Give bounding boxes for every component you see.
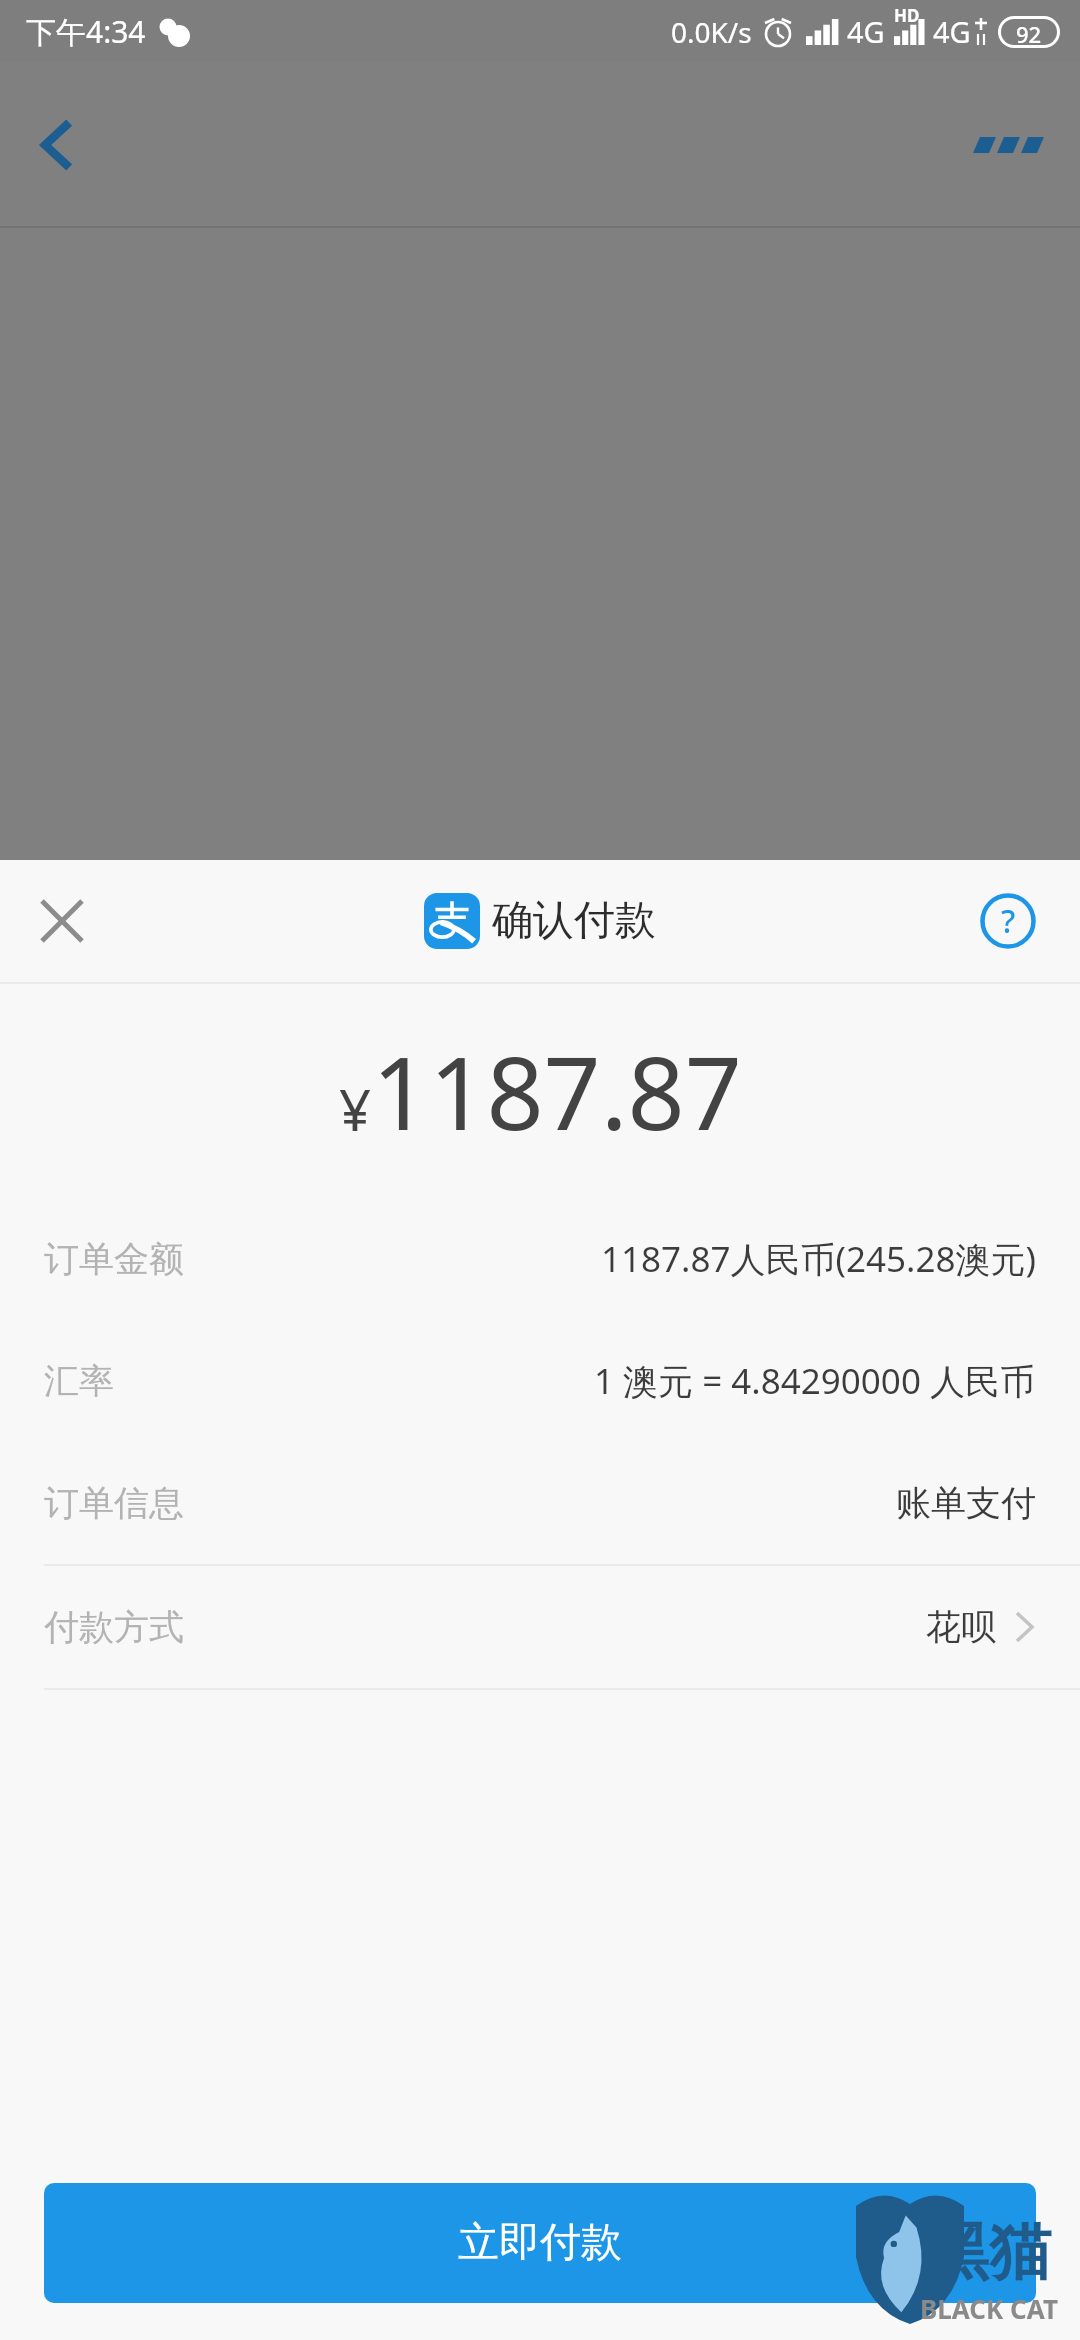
staticText: 1187.87人民币(245.28澳元) <box>601 1235 1036 1283</box>
staticText: 汇率 <box>44 1359 114 1403</box>
staticText: 花呗 <box>926 1605 996 1649</box>
staticText: 0.0K/s <box>671 13 752 51</box>
button[interactable]: More options <box>958 95 1058 195</box>
staticText: HD <box>894 4 920 27</box>
staticText: 立即付款 <box>458 2217 622 2269</box>
button[interactable]: Back <box>8 95 108 195</box>
staticText: ? <box>1001 899 1016 943</box>
staticText: BLACK CAT <box>920 2291 1058 2326</box>
staticText: 92 <box>1016 19 1042 45</box>
staticText: 黑猫 <box>927 2213 1051 2291</box>
button[interactable]: 付款方式 <box>0 1566 1080 1688</box>
staticText: 1 澳元 = 4.84290000 人民币 <box>594 1357 1036 1405</box>
staticText: 下午4:34 <box>26 11 146 52</box>
button[interactable]: 立即付款 <box>44 2183 1036 2303</box>
button[interactable]: Help <box>962 875 1054 967</box>
staticText: 账单支付 <box>896 1481 1036 1525</box>
staticText: 1187.87 <box>372 1023 742 1159</box>
staticText: 订单信息 <box>44 1481 184 1525</box>
staticText: 订单金额 <box>44 1237 184 1281</box>
staticText: ¥ <box>339 1071 372 1147</box>
staticText: 4G <box>847 12 885 51</box>
staticText: 4G <box>933 12 971 51</box>
button[interactable]: Close <box>16 875 108 967</box>
staticText: 付款方式 <box>44 1605 184 1649</box>
staticText: 确认付款 <box>492 895 656 947</box>
